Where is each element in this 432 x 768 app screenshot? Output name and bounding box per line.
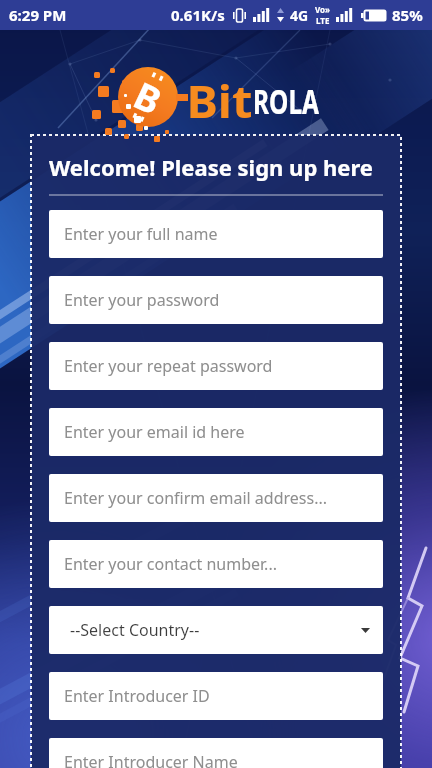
button[interactable]: Enter your email id here: [49, 408, 383, 456]
staticText: B: [127, 69, 170, 125]
staticText: Bit: [186, 70, 252, 131]
staticText: Enter your repeat password: [64, 355, 273, 377]
button[interactable]: --Select Country--: [49, 606, 383, 654]
staticText: 6:29 PM: [9, 5, 67, 25]
button[interactable]: Enter your repeat password: [49, 342, 383, 390]
staticText: Enter your confirm email address...: [64, 487, 327, 509]
staticText: Enter your contact number...: [64, 553, 277, 575]
staticText: Vo»: [315, 4, 330, 15]
staticText: 0.61K/s: [171, 5, 225, 25]
staticText: --Select Country--: [70, 619, 200, 641]
staticText: Enter your password: [64, 289, 220, 311]
staticText: Enter your full name: [64, 223, 218, 245]
button[interactable]: Enter your contact number...: [49, 540, 383, 588]
button[interactable]: Enter your full name: [49, 210, 383, 258]
button[interactable]: Enter Introducer ID: [49, 672, 383, 720]
staticText: ROLA: [253, 78, 319, 124]
staticText: 4G: [290, 6, 309, 25]
button[interactable]: Enter your confirm email address...: [49, 474, 383, 522]
staticText: 85%: [392, 5, 423, 25]
staticText: Enter Introducer ID: [64, 685, 210, 707]
button[interactable]: Enter your password: [49, 276, 383, 324]
button[interactable]: Enter Introducer Name: [49, 738, 383, 768]
staticText: Enter Introducer Name: [64, 751, 238, 768]
staticText: Enter your email id here: [64, 421, 245, 443]
staticText: Welcome! Please sign up here: [49, 152, 373, 182]
staticText: LTE: [316, 15, 330, 26]
